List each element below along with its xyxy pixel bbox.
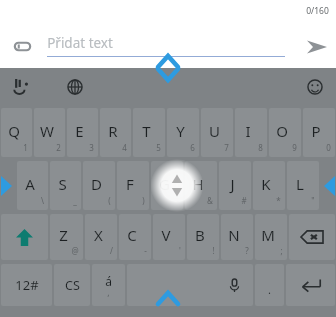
staticText: 0/160	[306, 5, 329, 17]
staticText: 5	[156, 142, 161, 153]
button[interactable]: U	[201, 108, 233, 157]
button[interactable]: D	[83, 161, 115, 210]
staticText: 1	[23, 142, 28, 153]
button[interactable]: C	[119, 214, 151, 260]
staticText: 2	[56, 142, 61, 153]
staticText: @	[71, 245, 79, 256]
staticText: 12#	[15, 276, 39, 294]
staticText: H	[192, 174, 204, 194]
staticText: _	[73, 195, 77, 206]
staticText: 0	[326, 142, 331, 153]
button[interactable]: H	[185, 161, 217, 210]
staticText: X	[94, 225, 103, 245]
staticText: '	[179, 245, 181, 256]
staticText: E	[75, 121, 84, 141]
staticText: 7	[224, 142, 229, 153]
button[interactable]: Handwriting	[6, 72, 36, 102]
staticText: J	[230, 174, 235, 194]
button[interactable]: X	[85, 214, 117, 260]
button[interactable]: O	[269, 108, 301, 157]
button[interactable]: Y	[167, 108, 199, 157]
staticText: #	[241, 195, 247, 206]
button[interactable]: S	[50, 161, 81, 210]
staticText: A	[25, 174, 35, 194]
staticText: *	[276, 195, 281, 206]
button[interactable]: 0/160	[306, 5, 329, 17]
staticText: P	[311, 121, 321, 141]
button[interactable]: 12#	[1, 264, 52, 306]
button[interactable]: Space	[127, 264, 253, 306]
staticText: G	[159, 174, 170, 194]
staticText: W	[40, 121, 54, 141]
button[interactable]: Attach	[9, 33, 35, 59]
button[interactable]: K	[253, 161, 285, 210]
button[interactable]: Send	[303, 33, 331, 61]
staticText: )	[142, 195, 145, 206]
staticText: ,	[107, 286, 110, 298]
button[interactable]: E	[67, 108, 98, 157]
button[interactable]: A	[17, 161, 48, 210]
button[interactable]: Přidat text	[47, 34, 285, 57]
button[interactable]: M	[255, 214, 287, 260]
staticText: K	[261, 174, 271, 194]
button[interactable]: Accents	[92, 264, 125, 306]
staticText: &	[207, 195, 213, 206]
button[interactable]: Emoji	[300, 72, 330, 102]
button[interactable]: R	[100, 108, 131, 157]
button[interactable]: G	[151, 161, 183, 210]
staticText: N	[228, 225, 240, 245]
staticText: B	[195, 225, 205, 245]
staticText: T	[142, 121, 151, 141]
staticText: ?	[245, 245, 249, 256]
button[interactable]: Z	[50, 214, 83, 260]
button[interactable]: Q	[1, 108, 32, 157]
staticText: Z	[59, 225, 68, 245]
staticText: !	[212, 245, 215, 256]
staticText: U	[209, 121, 220, 141]
staticText: "	[311, 195, 315, 206]
staticText: -	[144, 245, 147, 256]
staticText: F	[126, 174, 134, 194]
staticText: 6	[190, 142, 195, 153]
staticText: (	[108, 195, 111, 206]
staticText: D	[91, 174, 102, 194]
staticText: Y	[176, 121, 185, 141]
staticText: R	[108, 121, 118, 141]
staticText: V	[161, 225, 171, 245]
staticText: Q	[8, 121, 20, 141]
staticText: á	[105, 273, 112, 289]
button[interactable]: Shift	[1, 214, 48, 260]
staticText: 9	[292, 142, 297, 153]
staticText: CS	[65, 277, 80, 294]
button[interactable]: I	[235, 108, 267, 157]
staticText: -	[176, 195, 179, 206]
staticText: .	[268, 282, 271, 297]
staticText: L	[296, 174, 304, 194]
staticText: Přidat text	[47, 34, 113, 52]
staticText: I	[245, 121, 251, 141]
staticText: M	[261, 225, 275, 245]
button[interactable]: L	[287, 161, 319, 210]
button[interactable]: V	[153, 214, 185, 260]
button[interactable]: Backspace	[289, 214, 335, 260]
button[interactable]: Language	[60, 72, 90, 102]
button[interactable]: F	[117, 161, 149, 210]
button[interactable]: W	[34, 108, 65, 157]
button[interactable]: Enter	[286, 264, 335, 306]
staticText: 3	[89, 142, 94, 153]
button[interactable]: J	[219, 161, 251, 210]
staticText: O	[276, 121, 288, 141]
staticText: C	[127, 225, 137, 245]
button[interactable]: N	[221, 214, 253, 260]
staticText: \	[41, 195, 44, 206]
button[interactable]: B	[187, 214, 219, 260]
staticText: S	[58, 174, 67, 194]
staticText: 8	[258, 142, 263, 153]
staticText: /	[110, 245, 113, 256]
button[interactable]: T	[133, 108, 165, 157]
staticText: ;	[280, 245, 283, 256]
button[interactable]: CS	[54, 264, 90, 306]
staticText: 4	[122, 142, 127, 153]
button[interactable]: P	[303, 108, 335, 157]
